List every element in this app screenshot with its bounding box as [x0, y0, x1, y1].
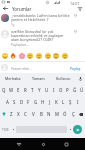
button[interactable]: Back: [14, 139, 24, 149]
staticText: Tamam: [32, 76, 45, 81]
button[interactable]: M: [53, 108, 61, 120]
staticText: V: [32, 111, 35, 117]
staticText: Paylaşılan...: [11, 43, 29, 47]
button[interactable]: Shift: [0, 108, 8, 120]
button[interactable]: G: [32, 96, 39, 108]
button[interactable]: ?123: [0, 120, 11, 139]
button[interactable]: N: [45, 108, 53, 120]
staticText: S: [13, 99, 16, 105]
button[interactable]: Emoji reaction: [53, 53, 59, 59]
button[interactable]: Back: [2, 5, 9, 12]
button[interactable]: Z: [8, 108, 15, 120]
staticText: U: [45, 87, 49, 93]
button[interactable]: Emoji reaction: [10, 53, 16, 59]
button[interactable]: Tamam: [26, 73, 51, 84]
button[interactable]: Send: [73, 125, 82, 134]
staticText: Ö: [63, 111, 67, 117]
staticText: B: [40, 111, 43, 117]
staticText: Ç: [72, 111, 75, 117]
button[interactable]: Emoji reaction: [19, 53, 25, 59]
staticText: T: [31, 87, 34, 93]
staticText: X: [17, 111, 20, 117]
button[interactable]: Q: [0, 84, 8, 96]
button[interactable]: Comma: [11, 120, 16, 139]
button[interactable]: Period: [67, 120, 73, 139]
button[interactable]: Emoji reaction: [62, 53, 68, 59]
button[interactable]: A: [4, 96, 11, 108]
button[interactable]: I: [50, 84, 57, 96]
staticText: C: [24, 111, 27, 117]
button[interactable]: F: [25, 96, 32, 108]
staticText: 14:07: [70, 1, 80, 6]
staticText: _ronaldobanks Lütfen bana birlikte yardı…: [11, 13, 70, 22]
button[interactable]: Ü: [78, 84, 85, 96]
button[interactable]: Filter comments: [76, 5, 83, 12]
staticText: D: [20, 99, 24, 105]
staticText: F: [27, 99, 30, 105]
button[interactable]: Y: [36, 84, 43, 96]
button[interactable]: Ö: [61, 108, 69, 120]
staticText: Kullanıcı: [56, 76, 71, 81]
button[interactable]: Ş: [67, 96, 74, 108]
button[interactable]: Like: [73, 29, 78, 34]
staticText: N: [47, 111, 51, 117]
button[interactable]: P: [64, 84, 71, 96]
staticText: H: [41, 99, 45, 105]
button[interactable]: O: [57, 84, 64, 96]
button[interactable]: Voice input: [76, 73, 85, 84]
button[interactable]: J: [46, 96, 53, 108]
staticText: J: [49, 99, 51, 105]
staticText: M: [55, 111, 60, 117]
staticText: Ş: [69, 99, 72, 105]
staticText: I: [77, 99, 79, 105]
staticText: A: [6, 99, 9, 105]
button[interactable]: Recent apps: [61, 139, 71, 149]
button[interactable]: Backspace: [77, 108, 85, 120]
button[interactable]: K: [53, 96, 60, 108]
button[interactable]: H: [39, 96, 46, 108]
button[interactable]: T: [29, 84, 36, 96]
staticText: Q: [2, 87, 6, 93]
button[interactable]: C: [22, 108, 29, 120]
button[interactable]: E: [15, 84, 22, 96]
button[interactable]: Kullanıcı: [51, 73, 76, 84]
button[interactable]: U: [43, 84, 50, 96]
staticText: O: [59, 87, 63, 93]
staticText: R: [24, 87, 27, 93]
staticText: P: [66, 87, 69, 93]
staticText: Paylaş: [70, 66, 81, 71]
button[interactable]: Home: [38, 139, 48, 149]
button[interactable]: Emoji reaction: [45, 53, 51, 59]
button[interactable]: Merhaba: [0, 73, 26, 84]
staticText: Merhaba: [5, 76, 21, 81]
staticText: Yorum ekle...: [11, 66, 32, 71]
button[interactable]: Ğ: [71, 84, 78, 96]
staticText: L: [62, 99, 65, 105]
staticText: E: [17, 87, 20, 93]
button[interactable]: Emoji reaction: [27, 53, 33, 59]
button[interactable]: Emoji reaction: [2, 53, 8, 59]
button[interactable]: Ç: [69, 108, 77, 120]
button[interactable]: R: [22, 84, 29, 96]
staticText: 1y: [11, 23, 15, 27]
button[interactable]: X: [15, 108, 22, 120]
button[interactable]: V: [29, 108, 37, 120]
button[interactable]: S: [11, 96, 18, 108]
staticText: Y: [38, 87, 41, 93]
staticText: Yorumlar: [12, 6, 32, 12]
button[interactable]: Emoji reaction: [36, 53, 42, 59]
button[interactable]: Like: [73, 13, 78, 18]
button[interactable]: W: [8, 84, 15, 96]
button[interactable]: I: [74, 96, 81, 108]
staticText: I: [53, 87, 55, 93]
staticText: W: [9, 87, 14, 93]
staticText: K: [55, 99, 58, 105]
button[interactable]: Paylaş: [70, 66, 81, 71]
staticText: Ü: [80, 87, 84, 93]
button[interactable]: L: [60, 96, 67, 108]
button[interactable]: B: [37, 108, 45, 120]
staticText: ozelfikri Bonushol bir çok kazandıran et…: [11, 29, 70, 42]
button[interactable]: D: [18, 96, 25, 108]
staticText: ?123: [2, 128, 9, 132]
